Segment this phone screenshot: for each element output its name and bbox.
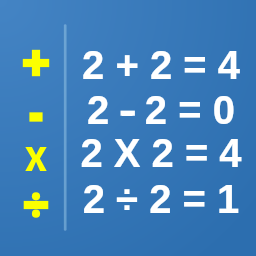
button[interactable]: 2 X 2 = 4 bbox=[66, 127, 256, 179]
button[interactable]: 2 ÷ 2 = 1 bbox=[66, 173, 256, 225]
staticText: 2 - 2 = 0 bbox=[66, 88, 256, 133]
button[interactable]: Division bbox=[15, 184, 57, 226]
button[interactable]: Subtraction bbox=[15, 96, 57, 138]
staticText: 2 X 2 = 4 bbox=[66, 131, 256, 176]
staticText: 2 + 2 = 4 bbox=[66, 43, 256, 88]
staticText: 2 ÷ 2 = 1 bbox=[66, 177, 256, 222]
button[interactable]: 2 + 2 = 4 bbox=[66, 39, 256, 91]
button[interactable]: 2 - 2 = 0 bbox=[66, 84, 256, 136]
button[interactable]: Addition bbox=[15, 42, 57, 84]
button[interactable]: Multiplication bbox=[15, 138, 57, 180]
